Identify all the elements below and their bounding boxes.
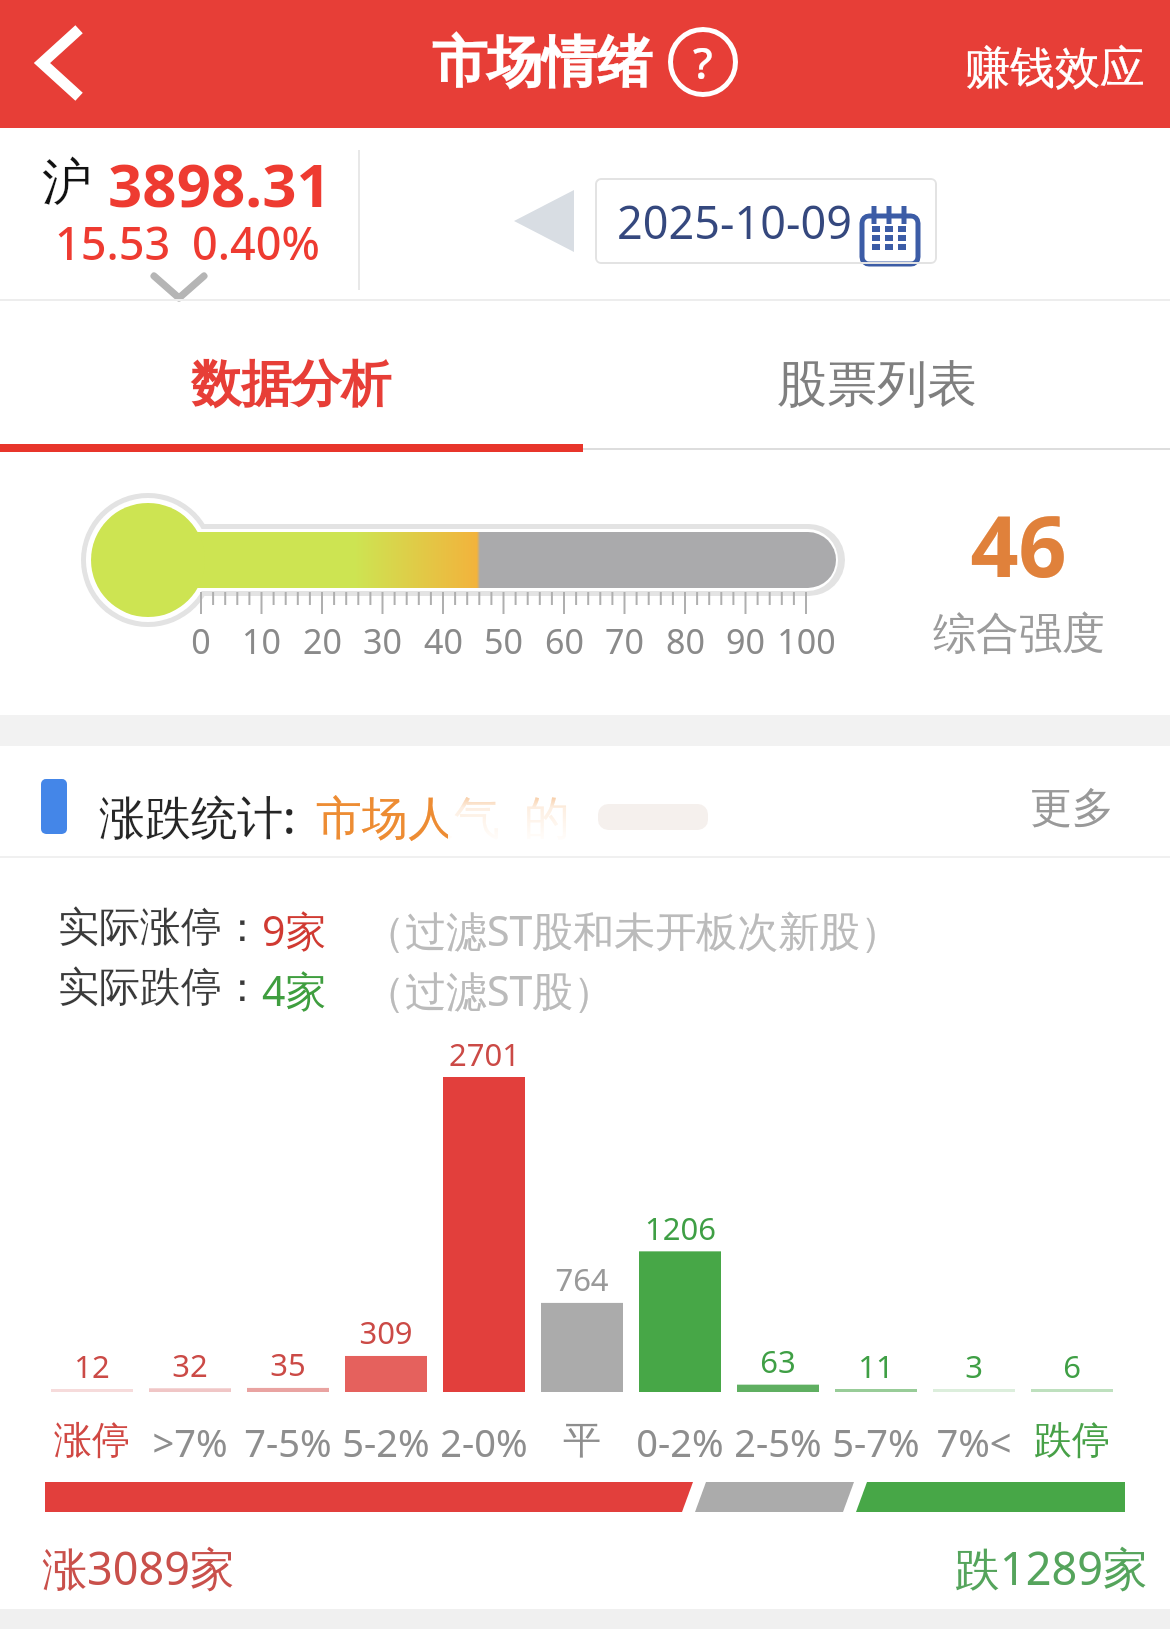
- staticText: 数据分析: [191, 353, 391, 416]
- staticText: 平: [563, 1416, 601, 1464]
- staticText: （过滤ST股）: [364, 962, 615, 1018]
- staticText: 100: [777, 618, 836, 664]
- staticText: 实际涨停：: [58, 902, 263, 954]
- staticText: 40: [424, 618, 463, 664]
- button[interactable]: 2025-10-09: [595, 178, 937, 264]
- staticText: 309: [359, 1311, 413, 1353]
- staticText: 5-7%: [832, 1416, 920, 1468]
- button[interactable]: 更多: [1030, 782, 1114, 835]
- staticText: 35: [270, 1343, 306, 1385]
- staticText: 50: [484, 618, 523, 664]
- staticText: （过滤ST股和未开板次新股）: [364, 902, 902, 958]
- staticText: 5-2%: [342, 1416, 430, 1468]
- button[interactable]: [506, 182, 582, 260]
- staticText: 46: [970, 487, 1067, 601]
- staticText: 7-5%: [244, 1416, 332, 1468]
- staticText: 4家: [262, 962, 327, 1018]
- staticText: 更多: [1030, 782, 1114, 835]
- staticText: 0: [191, 618, 211, 664]
- staticText: 跌停: [1034, 1416, 1110, 1464]
- staticText: 3898.31: [108, 143, 331, 225]
- staticText: 股票列表: [777, 353, 977, 416]
- staticText: 0.40%: [192, 212, 320, 273]
- staticText: 0-2%: [636, 1416, 724, 1468]
- staticText: 1206: [645, 1207, 716, 1249]
- button[interactable]: ?: [668, 27, 738, 97]
- button[interactable]: 数据分析: [0, 301, 585, 451]
- staticText: 2025-10-09: [617, 191, 852, 252]
- staticText: 11: [858, 1345, 894, 1387]
- staticText: 6: [1063, 1345, 1081, 1387]
- staticText: 3: [965, 1345, 983, 1387]
- staticText: 9家: [262, 902, 327, 958]
- staticText: 实际跌停：: [58, 962, 263, 1014]
- staticText: 沪: [42, 151, 92, 214]
- staticText: 7%<: [936, 1416, 1012, 1468]
- staticText: 15.53: [55, 212, 171, 273]
- button[interactable]: 赚钱效应: [965, 40, 1145, 97]
- staticText: 90: [726, 618, 765, 664]
- staticText: 跌1289家: [955, 1537, 1148, 1598]
- staticText: 32: [172, 1344, 208, 1386]
- staticText: 764: [555, 1258, 609, 1300]
- staticText: 2-0%: [440, 1416, 528, 1468]
- button[interactable]: 股票列表: [585, 301, 1170, 451]
- staticText: 综合强度: [933, 607, 1105, 661]
- staticText: 涨3089家: [42, 1537, 235, 1598]
- staticText: 20: [303, 618, 342, 664]
- staticText: >7%: [152, 1416, 228, 1468]
- staticText: 63: [760, 1340, 796, 1382]
- button[interactable]: [140, 264, 218, 308]
- staticText: 市场人气 的: [316, 785, 570, 848]
- staticText: 80: [666, 618, 705, 664]
- staticText: 涨跌统计:: [99, 785, 296, 848]
- staticText: 70: [605, 618, 644, 664]
- staticText: 涨停: [54, 1416, 130, 1464]
- staticText: 30: [363, 618, 402, 664]
- staticText: ?: [693, 32, 713, 92]
- button[interactable]: [20, 15, 100, 110]
- staticText: 12: [74, 1345, 110, 1387]
- staticText: 2701: [449, 1033, 520, 1075]
- staticText: 10: [242, 618, 281, 664]
- staticText: 60: [545, 618, 584, 664]
- staticText: 赚钱效应: [965, 40, 1145, 97]
- staticText: 市场情绪: [432, 28, 652, 97]
- staticText: 2-5%: [734, 1416, 822, 1468]
